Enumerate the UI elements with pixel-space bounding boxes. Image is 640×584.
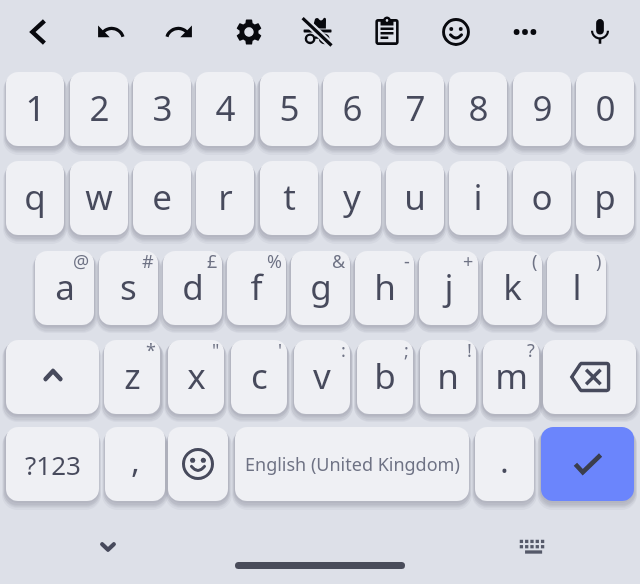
staticText: l	[572, 263, 582, 311]
button[interactable]: h	[355, 251, 414, 325]
button[interactable]: Incognito mode off	[290, 4, 346, 60]
button[interactable]: c	[231, 340, 287, 414]
staticText: s	[120, 263, 137, 311]
staticText: r	[218, 173, 233, 221]
button[interactable]	[168, 427, 228, 501]
button[interactable]: i	[449, 161, 507, 235]
staticText: 0	[595, 84, 616, 132]
staticText: 6	[342, 84, 363, 132]
staticText: u	[404, 173, 426, 221]
staticText: m	[495, 352, 528, 400]
button[interactable]: Settings	[221, 4, 277, 60]
button[interactable]: j	[419, 251, 478, 325]
button[interactable]: m	[483, 340, 539, 414]
button[interactable]: e	[133, 161, 191, 235]
staticText: .	[500, 438, 509, 483]
button[interactable]: Redo	[151, 4, 207, 60]
button[interactable]: Hide keyboard	[80, 519, 136, 575]
staticText: #	[142, 251, 154, 274]
button[interactable]: a	[35, 251, 94, 325]
staticText: 4	[215, 84, 236, 132]
staticText: b	[374, 352, 396, 400]
button[interactable]: Switch keyboard	[504, 521, 560, 577]
staticText: -	[404, 251, 410, 274]
staticText: +	[463, 251, 474, 274]
staticText: e	[152, 173, 172, 221]
staticText: (	[532, 251, 538, 274]
button[interactable]: z	[104, 340, 160, 414]
button[interactable]: t	[260, 161, 318, 235]
staticText: '	[278, 340, 283, 363]
button[interactable]: English (United Kingdom)	[235, 427, 469, 501]
staticText: "	[212, 340, 220, 363]
button[interactable]: g	[291, 251, 350, 325]
button[interactable]: q	[6, 161, 64, 235]
button[interactable]: 6	[323, 72, 381, 146]
staticText: ?123	[25, 447, 81, 482]
staticText: w	[85, 173, 113, 221]
button[interactable]: b	[357, 340, 413, 414]
button[interactable]: 9	[513, 72, 571, 146]
button[interactable]	[541, 427, 634, 501]
button[interactable]: 5	[260, 72, 318, 146]
staticText: d	[182, 263, 204, 311]
button[interactable]: o	[513, 161, 571, 235]
staticText: English (United Kingdom)	[245, 452, 460, 477]
staticText: :	[341, 340, 346, 363]
button[interactable]: ?123	[6, 427, 99, 501]
button[interactable]: p	[576, 161, 634, 235]
staticText: i	[473, 173, 483, 221]
button[interactable]: .	[475, 427, 534, 501]
button[interactable]: More options	[497, 4, 553, 60]
button[interactable]: 0	[576, 72, 634, 146]
button[interactable]: x	[168, 340, 224, 414]
staticText: 9	[532, 84, 553, 132]
button[interactable]	[6, 340, 99, 414]
button[interactable]: l	[547, 251, 606, 325]
button[interactable]: 3	[133, 72, 191, 146]
staticText: 7	[405, 84, 426, 132]
button[interactable]: 1	[6, 72, 64, 146]
staticText: y	[343, 173, 361, 221]
button[interactable]: s	[99, 251, 158, 325]
button[interactable]: n	[420, 340, 476, 414]
button[interactable]: Clipboard	[359, 4, 415, 60]
staticText: *	[146, 340, 156, 363]
button[interactable]: 7	[386, 72, 444, 146]
staticText: )	[596, 251, 602, 274]
button[interactable]: Undo	[83, 4, 139, 60]
staticText: &	[332, 251, 346, 274]
button[interactable]: d	[163, 251, 222, 325]
staticText: 1	[25, 84, 46, 132]
staticText: k	[503, 263, 522, 311]
staticText: p	[594, 173, 616, 221]
staticText: f	[250, 263, 263, 311]
button[interactable]: Emoji	[428, 4, 484, 60]
button[interactable]: f	[227, 251, 286, 325]
button[interactable]: w	[70, 161, 128, 235]
staticText: a	[55, 263, 75, 311]
staticText: 3	[152, 84, 173, 132]
staticText: o	[531, 173, 553, 221]
staticText: @	[73, 251, 90, 274]
button[interactable]: Voice input	[572, 4, 628, 60]
button[interactable]: y	[323, 161, 381, 235]
button[interactable]: k	[483, 251, 542, 325]
staticText: £	[207, 251, 218, 274]
button[interactable]: 2	[70, 72, 128, 146]
staticText: j	[444, 263, 454, 311]
button[interactable]: Back	[9, 4, 65, 60]
staticText: h	[374, 263, 396, 311]
staticText: q	[24, 173, 46, 221]
button[interactable]: 4	[196, 72, 254, 146]
button[interactable]: 8	[449, 72, 507, 146]
staticText: v	[313, 352, 331, 400]
staticText: z	[124, 352, 141, 400]
staticText: %	[267, 251, 282, 274]
button[interactable]: v	[294, 340, 350, 414]
button[interactable]: u	[386, 161, 444, 235]
button[interactable]	[543, 340, 636, 414]
button[interactable]: r	[196, 161, 254, 235]
button[interactable]: ,	[105, 427, 165, 501]
staticText: 5	[279, 84, 300, 132]
